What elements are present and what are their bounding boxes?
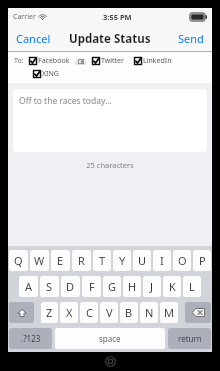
- staticText: return: [178, 333, 202, 344]
- staticText: Z: [46, 305, 53, 320]
- staticText: L: [189, 279, 195, 294]
- staticText: W: [34, 253, 45, 268]
- button[interactable]: R: [72, 250, 91, 271]
- staticText: D: [66, 279, 75, 294]
- button[interactable]: W: [30, 250, 49, 271]
- staticText: .?123: [21, 333, 41, 344]
- staticText: N: [145, 305, 154, 320]
- staticText: Carrier: [13, 12, 36, 22]
- staticText: T: [99, 253, 106, 268]
- button[interactable]: P: [193, 250, 211, 271]
- button[interactable]: B: [120, 302, 138, 323]
- button[interactable]: return: [168, 328, 211, 349]
- button[interactable]: M: [160, 302, 178, 323]
- staticText: 3:55 PM: [103, 12, 132, 22]
- button[interactable]: O: [173, 250, 191, 271]
- staticText: G: [108, 279, 117, 294]
- staticText: U: [138, 253, 147, 268]
- staticText: M: [164, 305, 174, 320]
- button[interactable]: Facebook options: [75, 57, 86, 65]
- staticText: E: [57, 253, 64, 268]
- button[interactable]: Backspace: [185, 302, 211, 323]
- button[interactable]: space: [55, 328, 165, 349]
- staticText: I: [160, 253, 164, 268]
- staticText: A: [25, 279, 33, 294]
- staticText: Send: [178, 31, 204, 46]
- staticText: J: [150, 279, 154, 294]
- button[interactable]: Cancel: [8, 26, 59, 51]
- button[interactable]: Shift: [9, 302, 34, 323]
- staticText: O: [178, 253, 187, 268]
- staticText: LinkedIn: [143, 56, 172, 66]
- staticText: V: [106, 305, 113, 320]
- staticText: Twitter: [101, 56, 124, 66]
- button[interactable]: N: [140, 302, 158, 323]
- button[interactable]: Send: [170, 26, 212, 51]
- staticText: K: [169, 279, 176, 294]
- button[interactable]: U: [133, 250, 151, 271]
- button[interactable]: I: [153, 250, 171, 271]
- staticText: X: [66, 305, 73, 320]
- button[interactable]: S: [40, 276, 59, 297]
- button[interactable]: J: [143, 276, 161, 297]
- button[interactable]: .?123: [9, 328, 52, 349]
- button[interactable]: V: [100, 302, 118, 323]
- staticText: 25 characters: [8, 160, 212, 170]
- button[interactable]: C: [80, 302, 98, 323]
- staticText: Q: [14, 253, 23, 268]
- button[interactable]: T: [93, 250, 111, 271]
- button[interactable]: Q: [9, 250, 28, 271]
- staticText: space: [99, 333, 121, 344]
- button[interactable]: A: [19, 276, 38, 297]
- button[interactable]: E: [51, 250, 70, 271]
- staticText: Cancel: [16, 31, 51, 46]
- button[interactable]: Home: [105, 356, 116, 367]
- button[interactable]: Off to the races today...: [13, 89, 207, 152]
- staticText: Y: [119, 253, 126, 268]
- staticText: B: [125, 305, 133, 320]
- button[interactable]: LinkedIn: [134, 56, 172, 66]
- button[interactable]: XING: [33, 69, 59, 79]
- staticText: H: [128, 279, 137, 294]
- button[interactable]: F: [82, 276, 101, 297]
- button[interactable]: H: [123, 276, 141, 297]
- button[interactable]: G: [103, 276, 121, 297]
- button[interactable]: L: [183, 276, 201, 297]
- button[interactable]: D: [61, 276, 80, 297]
- staticText: Facebook: [38, 56, 70, 66]
- button[interactable]: X: [60, 302, 78, 323]
- staticText: F: [89, 279, 95, 294]
- button[interactable]: K: [163, 276, 181, 297]
- staticText: Update Status: [69, 31, 151, 47]
- button[interactable]: Y: [113, 250, 131, 271]
- button[interactable]: Facebook: [29, 56, 70, 66]
- staticText: To:: [14, 56, 24, 66]
- staticText: XING: [42, 69, 59, 79]
- button[interactable]: Z: [41, 302, 58, 323]
- button[interactable]: Twitter: [92, 56, 124, 66]
- staticText: Off to the races today...: [19, 95, 112, 107]
- staticText: P: [199, 253, 206, 268]
- staticText: R: [78, 253, 85, 268]
- staticText: C: [86, 305, 93, 320]
- staticText: S: [46, 279, 53, 294]
